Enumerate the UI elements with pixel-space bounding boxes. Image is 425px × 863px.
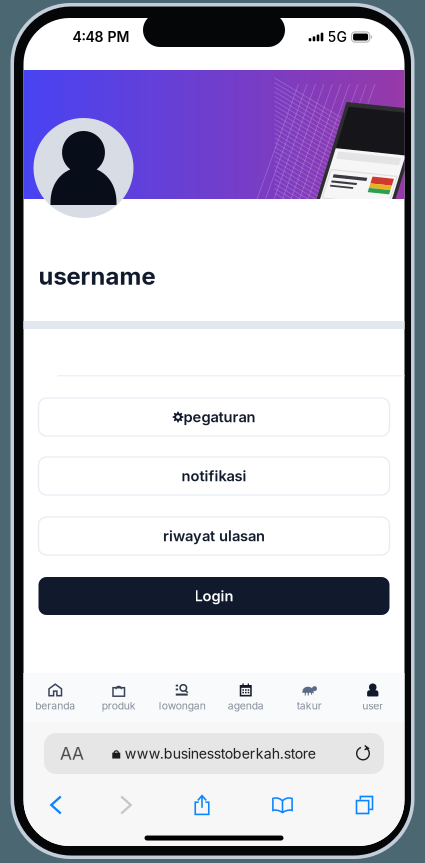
button[interactable]: riwayat ulasan xyxy=(38,517,389,555)
staticText: riwayat ulasan xyxy=(163,527,265,545)
button[interactable]: Bookmarks xyxy=(240,786,324,824)
staticText: 5G xyxy=(327,28,346,45)
staticText: www.businesstoberkah.store xyxy=(125,745,316,762)
staticText: 4:48 PM xyxy=(72,28,129,45)
button[interactable]: Login xyxy=(38,577,389,615)
staticText: AA xyxy=(60,743,84,764)
button[interactable]: notifikasi xyxy=(38,457,389,495)
staticText: notifikasi xyxy=(181,467,246,485)
button[interactable]: Share xyxy=(163,786,240,824)
button[interactable]: beranda xyxy=(23,673,87,721)
button[interactable]: takur xyxy=(277,673,341,721)
button[interactable]: produk xyxy=(87,673,150,721)
staticText: pegaturan xyxy=(183,408,255,426)
staticText: username xyxy=(38,261,155,290)
button[interactable]: pegaturan xyxy=(38,398,389,436)
staticText: lowongan xyxy=(159,699,206,712)
button[interactable]: Forward xyxy=(88,786,163,824)
button[interactable]: agenda xyxy=(214,673,277,721)
staticText: beranda xyxy=(35,699,75,712)
button[interactable]: Tabs xyxy=(324,786,404,824)
button[interactable]: lowongan xyxy=(150,673,214,721)
staticText: produk xyxy=(102,699,136,712)
staticText: agenda xyxy=(228,699,264,712)
button[interactable]: Back xyxy=(23,786,88,824)
button[interactable]: AA xyxy=(44,733,384,774)
button[interactable]: user xyxy=(341,673,404,721)
staticText: Login xyxy=(194,587,233,605)
staticText: user xyxy=(362,699,383,712)
staticText: takur xyxy=(297,699,322,712)
